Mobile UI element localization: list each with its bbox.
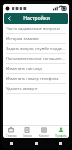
staticText: История заказов [6,36,39,41]
button[interactable]: Задать вопрос службе поддержки [3,44,69,53]
staticText: Часто задаваемые вопросы [6,26,60,31]
staticText: Профиль [55,134,67,138]
button[interactable]: Профиль [52,126,69,138]
button[interactable]: Пользовательское соглашение [3,54,69,63]
button[interactable]: Часто задаваемые вопросы [3,24,69,33]
button[interactable]: Заказы [19,126,35,138]
button[interactable]: Изменить пин-код [3,64,69,73]
button[interactable]: Каталог [35,126,52,138]
staticText: Пользовательское соглашение [6,56,66,61]
staticText: Настройки [23,15,50,22]
staticText: Заказы [23,134,32,138]
staticText: Изменить номер телефона [6,76,59,81]
button[interactable]: Главная [3,126,19,138]
staticText: Изменить пин-код [6,66,42,71]
staticText: Удалить аккаунт [6,86,38,91]
button[interactable]: Удалить аккаунт [3,84,69,93]
button[interactable]: История заказов [3,34,69,43]
button[interactable]: Back [4,13,14,24]
staticText: Главная [6,134,17,138]
staticText: Задать вопрос службе поддержки [6,46,66,51]
staticText: Каталог [39,134,49,138]
button[interactable]: Изменить номер телефона [3,74,69,83]
